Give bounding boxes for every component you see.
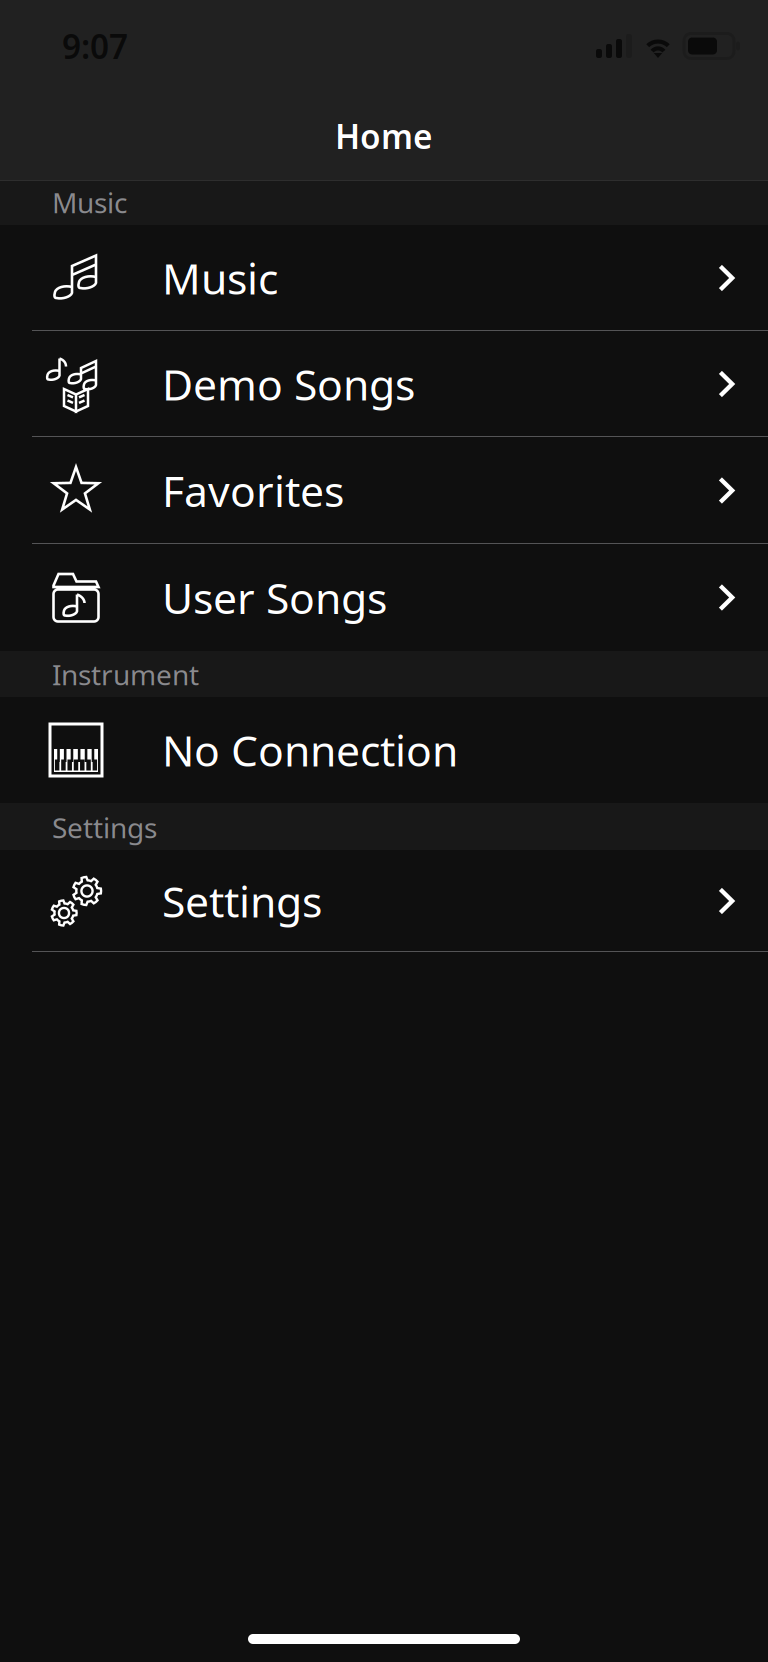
staticText: 9:07 — [62, 24, 128, 68]
staticText: Instrument — [52, 656, 199, 693]
button[interactable]: No Connection — [0, 697, 768, 803]
staticText: Settings — [162, 873, 322, 929]
staticText: Music — [52, 184, 127, 221]
button[interactable]: Settings — [0, 850, 768, 952]
button[interactable]: Favorites — [0, 437, 768, 544]
staticText: Settings — [52, 809, 157, 846]
button[interactable]: Demo Songs — [0, 331, 768, 437]
staticText: Home — [335, 114, 433, 158]
staticText: Demo Songs — [162, 356, 415, 412]
button[interactable]: Music — [0, 225, 768, 331]
staticText: User Songs — [162, 569, 387, 626]
staticText: Music — [162, 250, 278, 306]
staticText: Favorites — [162, 462, 344, 519]
staticText: No Connection — [162, 722, 458, 778]
button[interactable]: User Songs — [0, 544, 768, 651]
